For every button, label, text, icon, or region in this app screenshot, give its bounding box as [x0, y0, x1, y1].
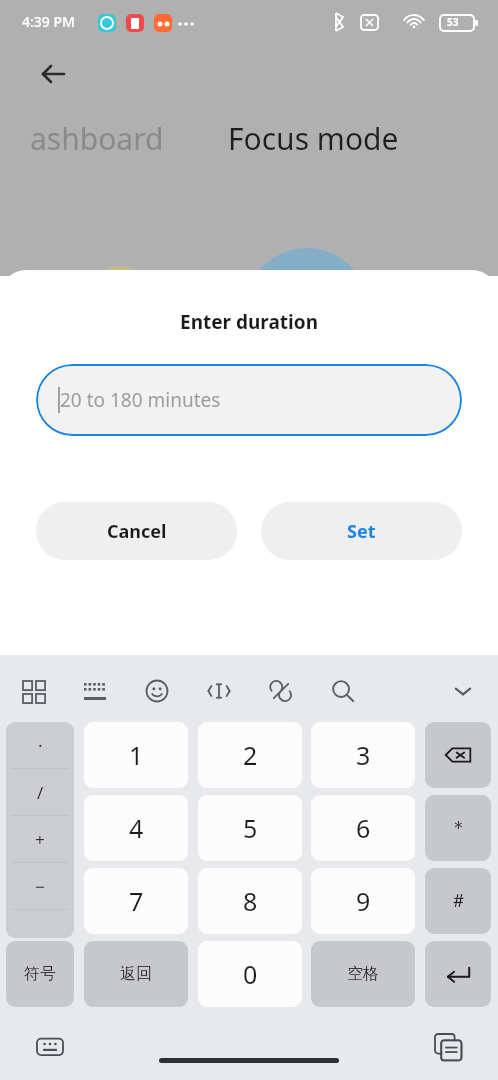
button[interactable]: Clipboard: [426, 1025, 470, 1069]
button[interactable]: 9: [311, 868, 415, 934]
button[interactable]: Backspace: [425, 722, 491, 788]
staticText: ＃: [449, 889, 468, 913]
button[interactable]: 0: [198, 941, 302, 1007]
staticText: +: [35, 828, 45, 851]
button[interactable]: 7: [84, 868, 188, 934]
staticText: /: [37, 781, 44, 804]
button[interactable]: 8: [198, 868, 302, 934]
button[interactable]: +: [6, 816, 74, 862]
staticText: 9: [356, 884, 371, 918]
button[interactable]: Cancel: [36, 502, 237, 560]
button[interactable]: −: [6, 863, 74, 909]
button[interactable]: 2: [198, 722, 302, 788]
staticText: 4: [129, 811, 144, 845]
button[interactable]: Emoji: [135, 669, 179, 713]
staticText: ＊: [449, 816, 468, 840]
button[interactable]: Clipboard link: [259, 669, 303, 713]
staticText: Cancel: [107, 519, 167, 544]
staticText: 53: [447, 15, 459, 29]
button[interactable]: 5: [198, 795, 302, 861]
staticText: 8: [243, 884, 258, 918]
staticText: Focus mode: [228, 118, 399, 159]
button[interactable]: Set: [261, 502, 462, 560]
button[interactable]: 20 to 180 minutes: [36, 364, 462, 436]
staticText: 6: [356, 811, 371, 845]
staticText: −: [35, 875, 45, 898]
staticText: 0: [243, 957, 258, 991]
staticText: 1: [129, 738, 144, 772]
staticText: ashboard: [30, 118, 164, 159]
staticText: 20 to 180 minutes: [60, 387, 221, 413]
button[interactable]: ＃: [425, 868, 491, 934]
button[interactable]: 6: [311, 795, 415, 861]
button[interactable]: Hide keyboard: [441, 669, 485, 713]
button[interactable]: Toolbar: [12, 669, 56, 713]
button[interactable]: 3: [311, 722, 415, 788]
button[interactable]: Enter: [425, 941, 491, 1007]
button[interactable]: 空格: [311, 941, 415, 1007]
staticText: 5: [243, 811, 258, 845]
button[interactable]: Back: [29, 50, 77, 98]
button[interactable]: ·: [6, 722, 74, 768]
button[interactable]: /: [6, 769, 74, 815]
button[interactable]: Switch keyboard: [28, 1025, 72, 1069]
staticText: 3: [356, 738, 371, 772]
staticText: 返回: [120, 964, 152, 984]
button[interactable]: 返回: [84, 941, 188, 1007]
staticText: 4:39 PM: [22, 12, 75, 31]
staticText: 符号: [24, 964, 56, 984]
staticText: 空格: [347, 964, 379, 984]
button[interactable]: 1: [84, 722, 188, 788]
button[interactable]: 4: [84, 795, 188, 861]
staticText: Set: [347, 519, 376, 544]
staticText: Enter duration: [0, 309, 498, 335]
button[interactable]: Search: [321, 669, 365, 713]
button[interactable]: Cursor: [197, 669, 241, 713]
staticText: 7: [129, 884, 144, 918]
button[interactable]: Keyboard layout: [73, 669, 117, 713]
staticText: ·: [38, 734, 43, 757]
staticText: 2: [243, 738, 258, 772]
button[interactable]: 符号: [6, 941, 74, 1007]
button[interactable]: ＊: [425, 795, 491, 861]
